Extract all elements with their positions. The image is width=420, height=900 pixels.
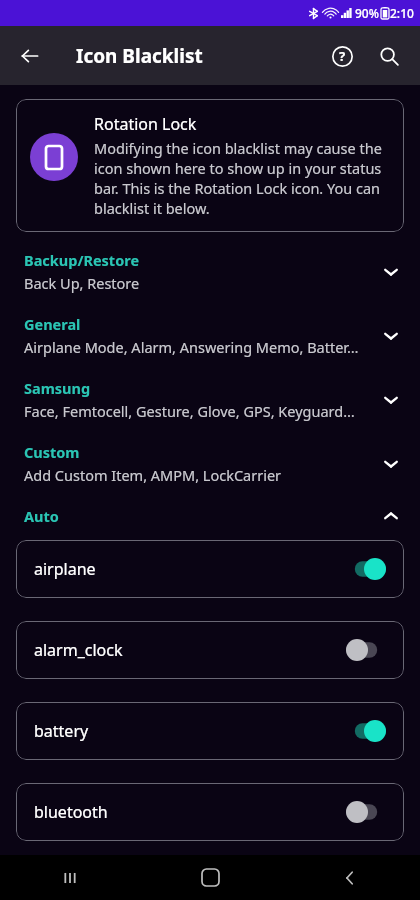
button[interactable]: bluetooth [16,783,404,841]
staticText: battery [34,720,346,742]
button[interactable]: Recents [0,855,140,900]
staticText: Custom [24,442,80,462]
button[interactable]: Home [140,855,280,900]
staticText: airplane [34,558,346,580]
button[interactable]: Samsung [0,378,420,421]
button[interactable]: Back [10,36,50,76]
staticText: Back Up, Restore [24,273,140,293]
staticText: Backup/Restore [24,250,140,270]
button[interactable]: Search [368,35,410,77]
button[interactable]: Custom [0,442,420,485]
staticText: Modifying the icon blacklist may cause t… [94,138,388,218]
staticText: Add Custom Item, AMPM, LockCarrier [24,465,282,485]
staticText: 2:10 [390,5,414,21]
button[interactable]: alarm_clock [16,621,404,679]
button[interactable]: airplane [16,540,404,598]
button[interactable]: Auto [0,506,420,526]
staticText: 90% [355,5,379,21]
button[interactable]: Rotation Lock [16,99,404,232]
button[interactable]: battery [16,702,404,760]
button[interactable]: Backup/Restore [0,250,420,293]
staticText: General [24,314,81,334]
button[interactable]: Help [321,35,363,77]
staticText: Auto [24,506,59,526]
staticText: ? [339,47,346,65]
staticText: Rotation Lock [94,113,197,135]
staticText: Icon Blacklist [76,43,203,69]
staticText: Samsung [24,378,91,398]
button[interactable]: Back [280,855,420,900]
staticText: Airplane Mode, Alarm, Answering Memo, Ba… [24,337,359,357]
staticText: Face, Femtocell, Gesture, Glove, GPS, Ke… [24,401,355,421]
staticText: alarm_clock [34,639,346,661]
button[interactable]: General [0,314,420,357]
staticText: bluetooth [34,801,346,823]
